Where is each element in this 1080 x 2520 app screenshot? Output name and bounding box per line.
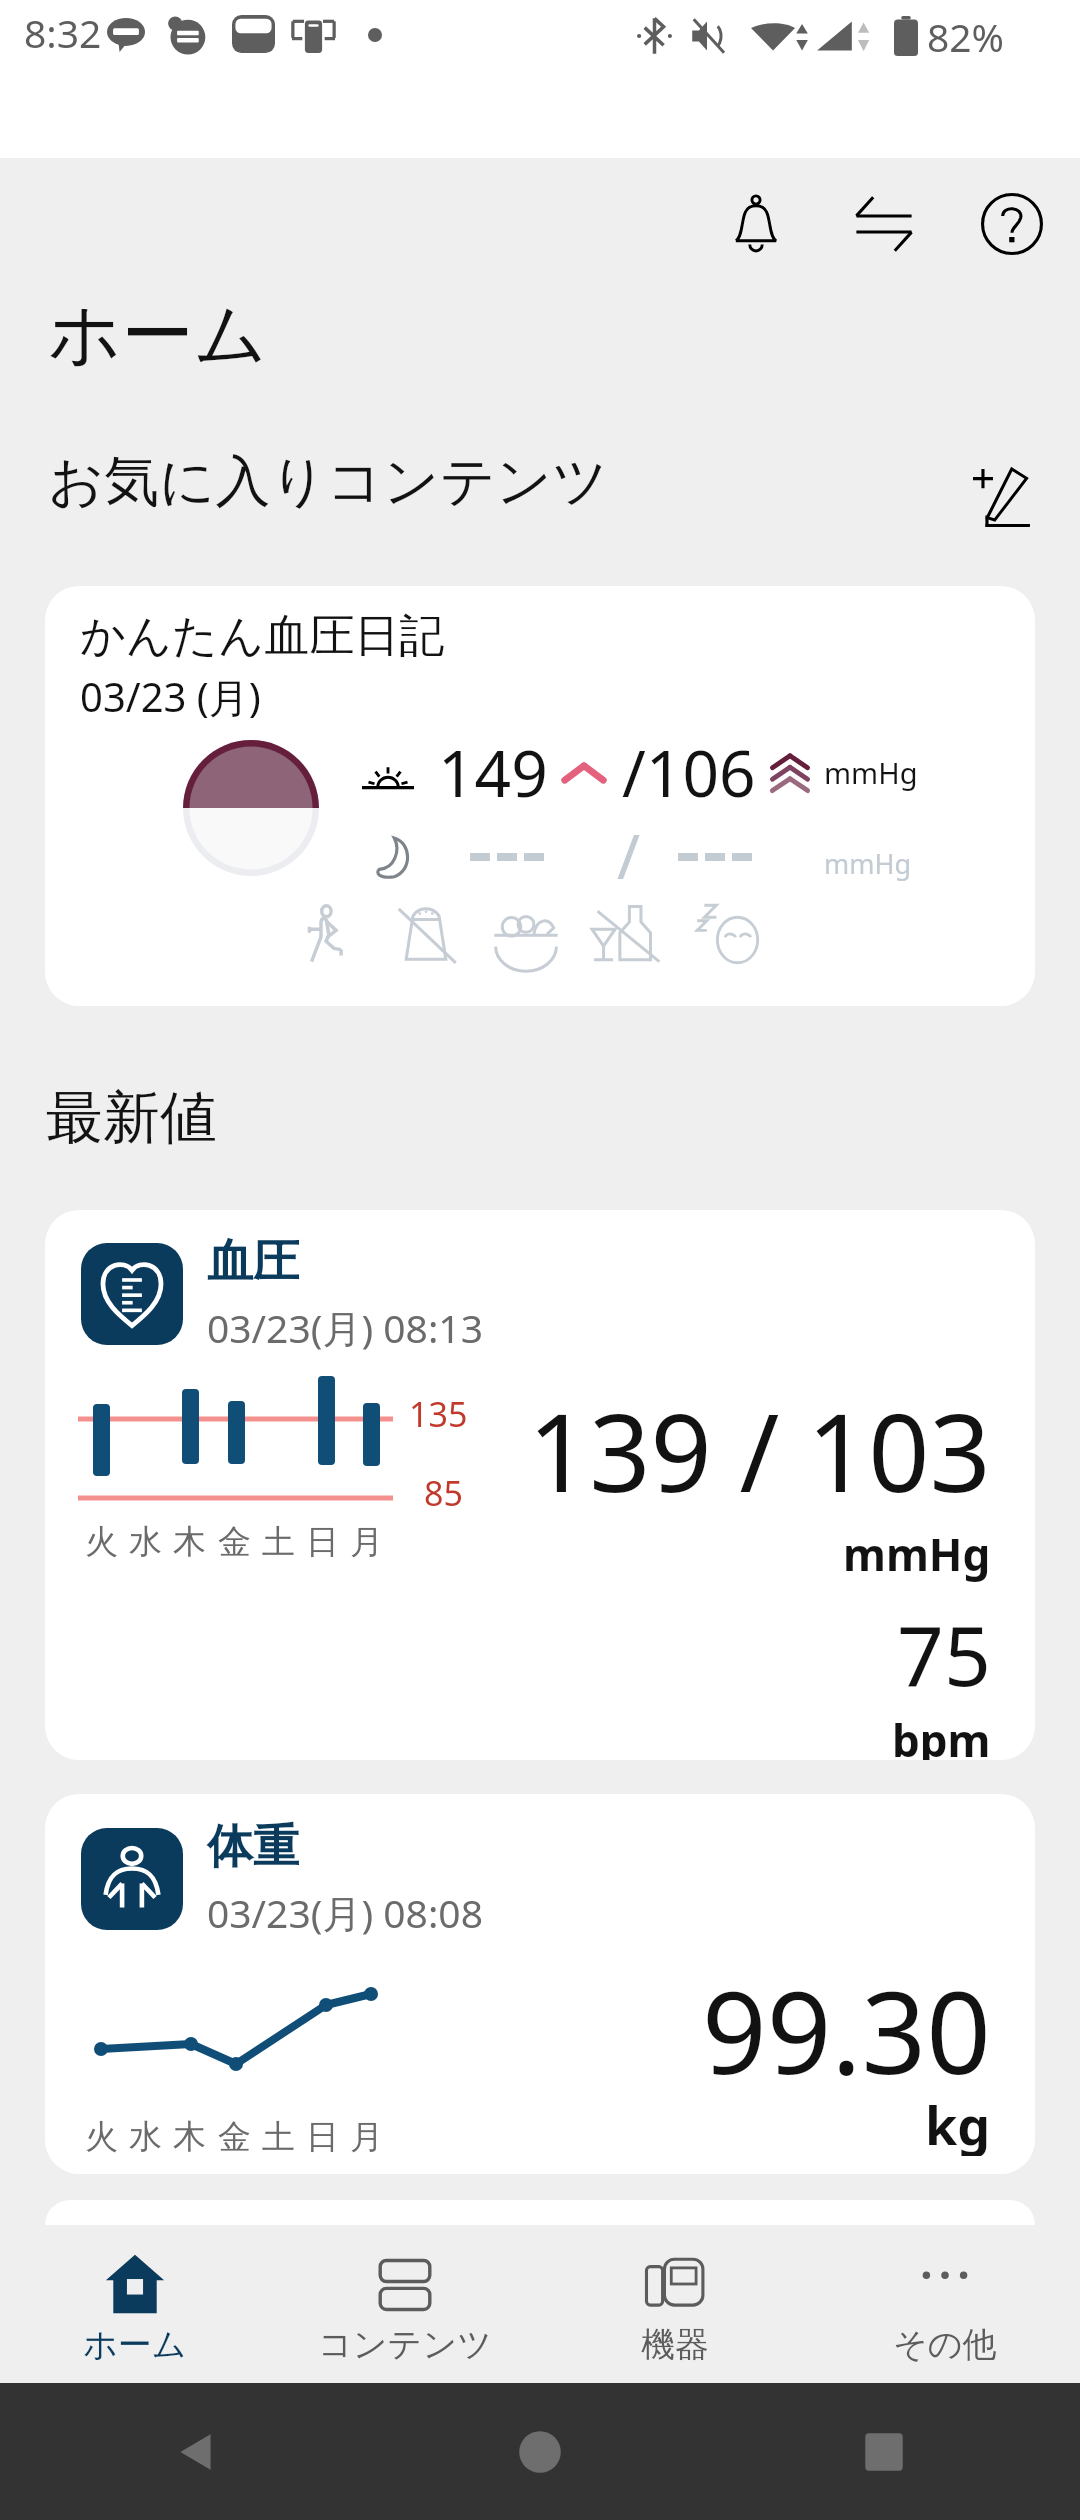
staticText: 体重 [207,1818,299,1876]
button[interactable]: コンテンツ [270,2225,540,2383]
button[interactable]: その他 [810,2225,1080,2383]
staticText: 金 [218,2116,251,2158]
button[interactable]: Help [952,164,1072,284]
staticText: かんたん血圧日記 [80,608,445,665]
staticText: 8:32 [24,6,102,59]
staticText: 82% [927,10,1005,54]
staticText: 139 / 103 [528,1378,991,1524]
button[interactable]: Notifications [696,164,816,284]
staticText: 135 [409,1391,468,1437]
staticText: 血圧 [207,1233,299,1291]
staticText: 149 [438,729,548,816]
staticText: kg [925,2089,991,2156]
staticText: 03/23(月) 08:08 [207,1886,483,1939]
staticText: / [617,813,641,897]
staticText: 日 [306,2116,339,2158]
staticText: 85 [424,1470,463,1516]
staticText: 金 [218,1521,251,1563]
staticText: 月 [350,1521,383,1563]
staticText: 03/23(月) 08:13 [207,1301,483,1354]
staticText: bpm [892,1710,991,1760]
staticText: ホーム [48,290,268,376]
button[interactable]: 体重 [45,1794,1035,2174]
button[interactable]: 機器 [540,2225,810,2383]
staticText: 木 [173,1521,206,1563]
button[interactable]: 血圧 [45,1210,1035,1760]
staticText: 木 [173,2116,206,2158]
staticText: 99.30 [702,1953,991,2107]
button[interactable]: Sync [824,164,944,284]
staticText: その他 [893,2323,997,2366]
staticText: ホーム [83,2323,187,2366]
staticText: 最新値 [46,1082,217,1154]
staticText: 火 [85,1521,118,1563]
staticText: 水 [129,1521,162,1563]
staticText: 75 [897,1598,991,1710]
staticText: 日 [306,1521,339,1563]
staticText: お気に入りコンテンツ [48,447,609,516]
button[interactable]: Edit favorites [944,426,1054,536]
staticText: 土 [262,1521,295,1563]
staticText: 土 [262,2116,295,2158]
staticText: 水 [129,2116,162,2158]
staticText: mmHg [824,753,918,792]
staticText: 月 [350,2116,383,2158]
staticText: 火 [85,2116,118,2158]
staticText: コンテンツ [318,2323,492,2366]
button[interactable]: かんたん血圧日記 [45,586,1035,1006]
staticText: mmHg [843,1524,991,1584]
button[interactable]: ホーム [0,2225,270,2383]
staticText: /106 [622,729,756,816]
staticText: mmHg [824,845,912,882]
staticText: 機器 [641,2323,709,2366]
staticText: 03/23 (月) [80,669,261,724]
